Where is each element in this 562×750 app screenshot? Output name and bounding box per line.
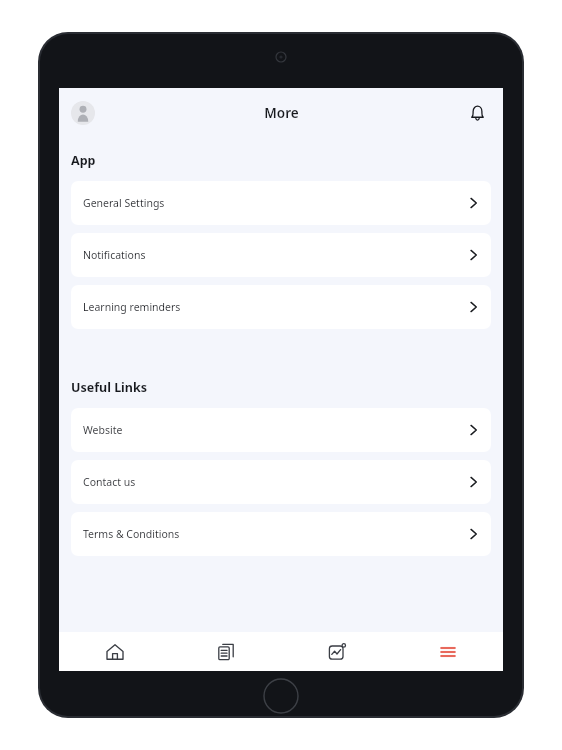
button[interactable]: Terms & Conditions [71,512,491,556]
button[interactable]: Website [71,408,491,452]
button[interactable]: Notifications [71,233,491,277]
button[interactable]: Learning reminders [71,285,491,329]
button[interactable]: Home [59,632,170,671]
staticText: Notifications [83,248,146,262]
staticText: Useful Links [71,379,148,396]
button[interactable]: Contact us [71,460,491,504]
button[interactable]: Progress [281,632,392,671]
button[interactable]: Courses [170,632,281,671]
button[interactable]: Notifications [463,99,491,127]
staticText: Website [83,423,123,437]
staticText: General Settings [83,196,165,210]
staticText: Contact us [83,475,136,489]
button[interactable]: General Settings [71,181,491,225]
staticText: Learning reminders [83,300,181,314]
button[interactable]: Profile [71,101,95,125]
staticText: App [71,152,96,169]
button[interactable]: More [392,632,503,671]
staticText: More [264,104,299,122]
staticText: Terms & Conditions [83,527,180,541]
